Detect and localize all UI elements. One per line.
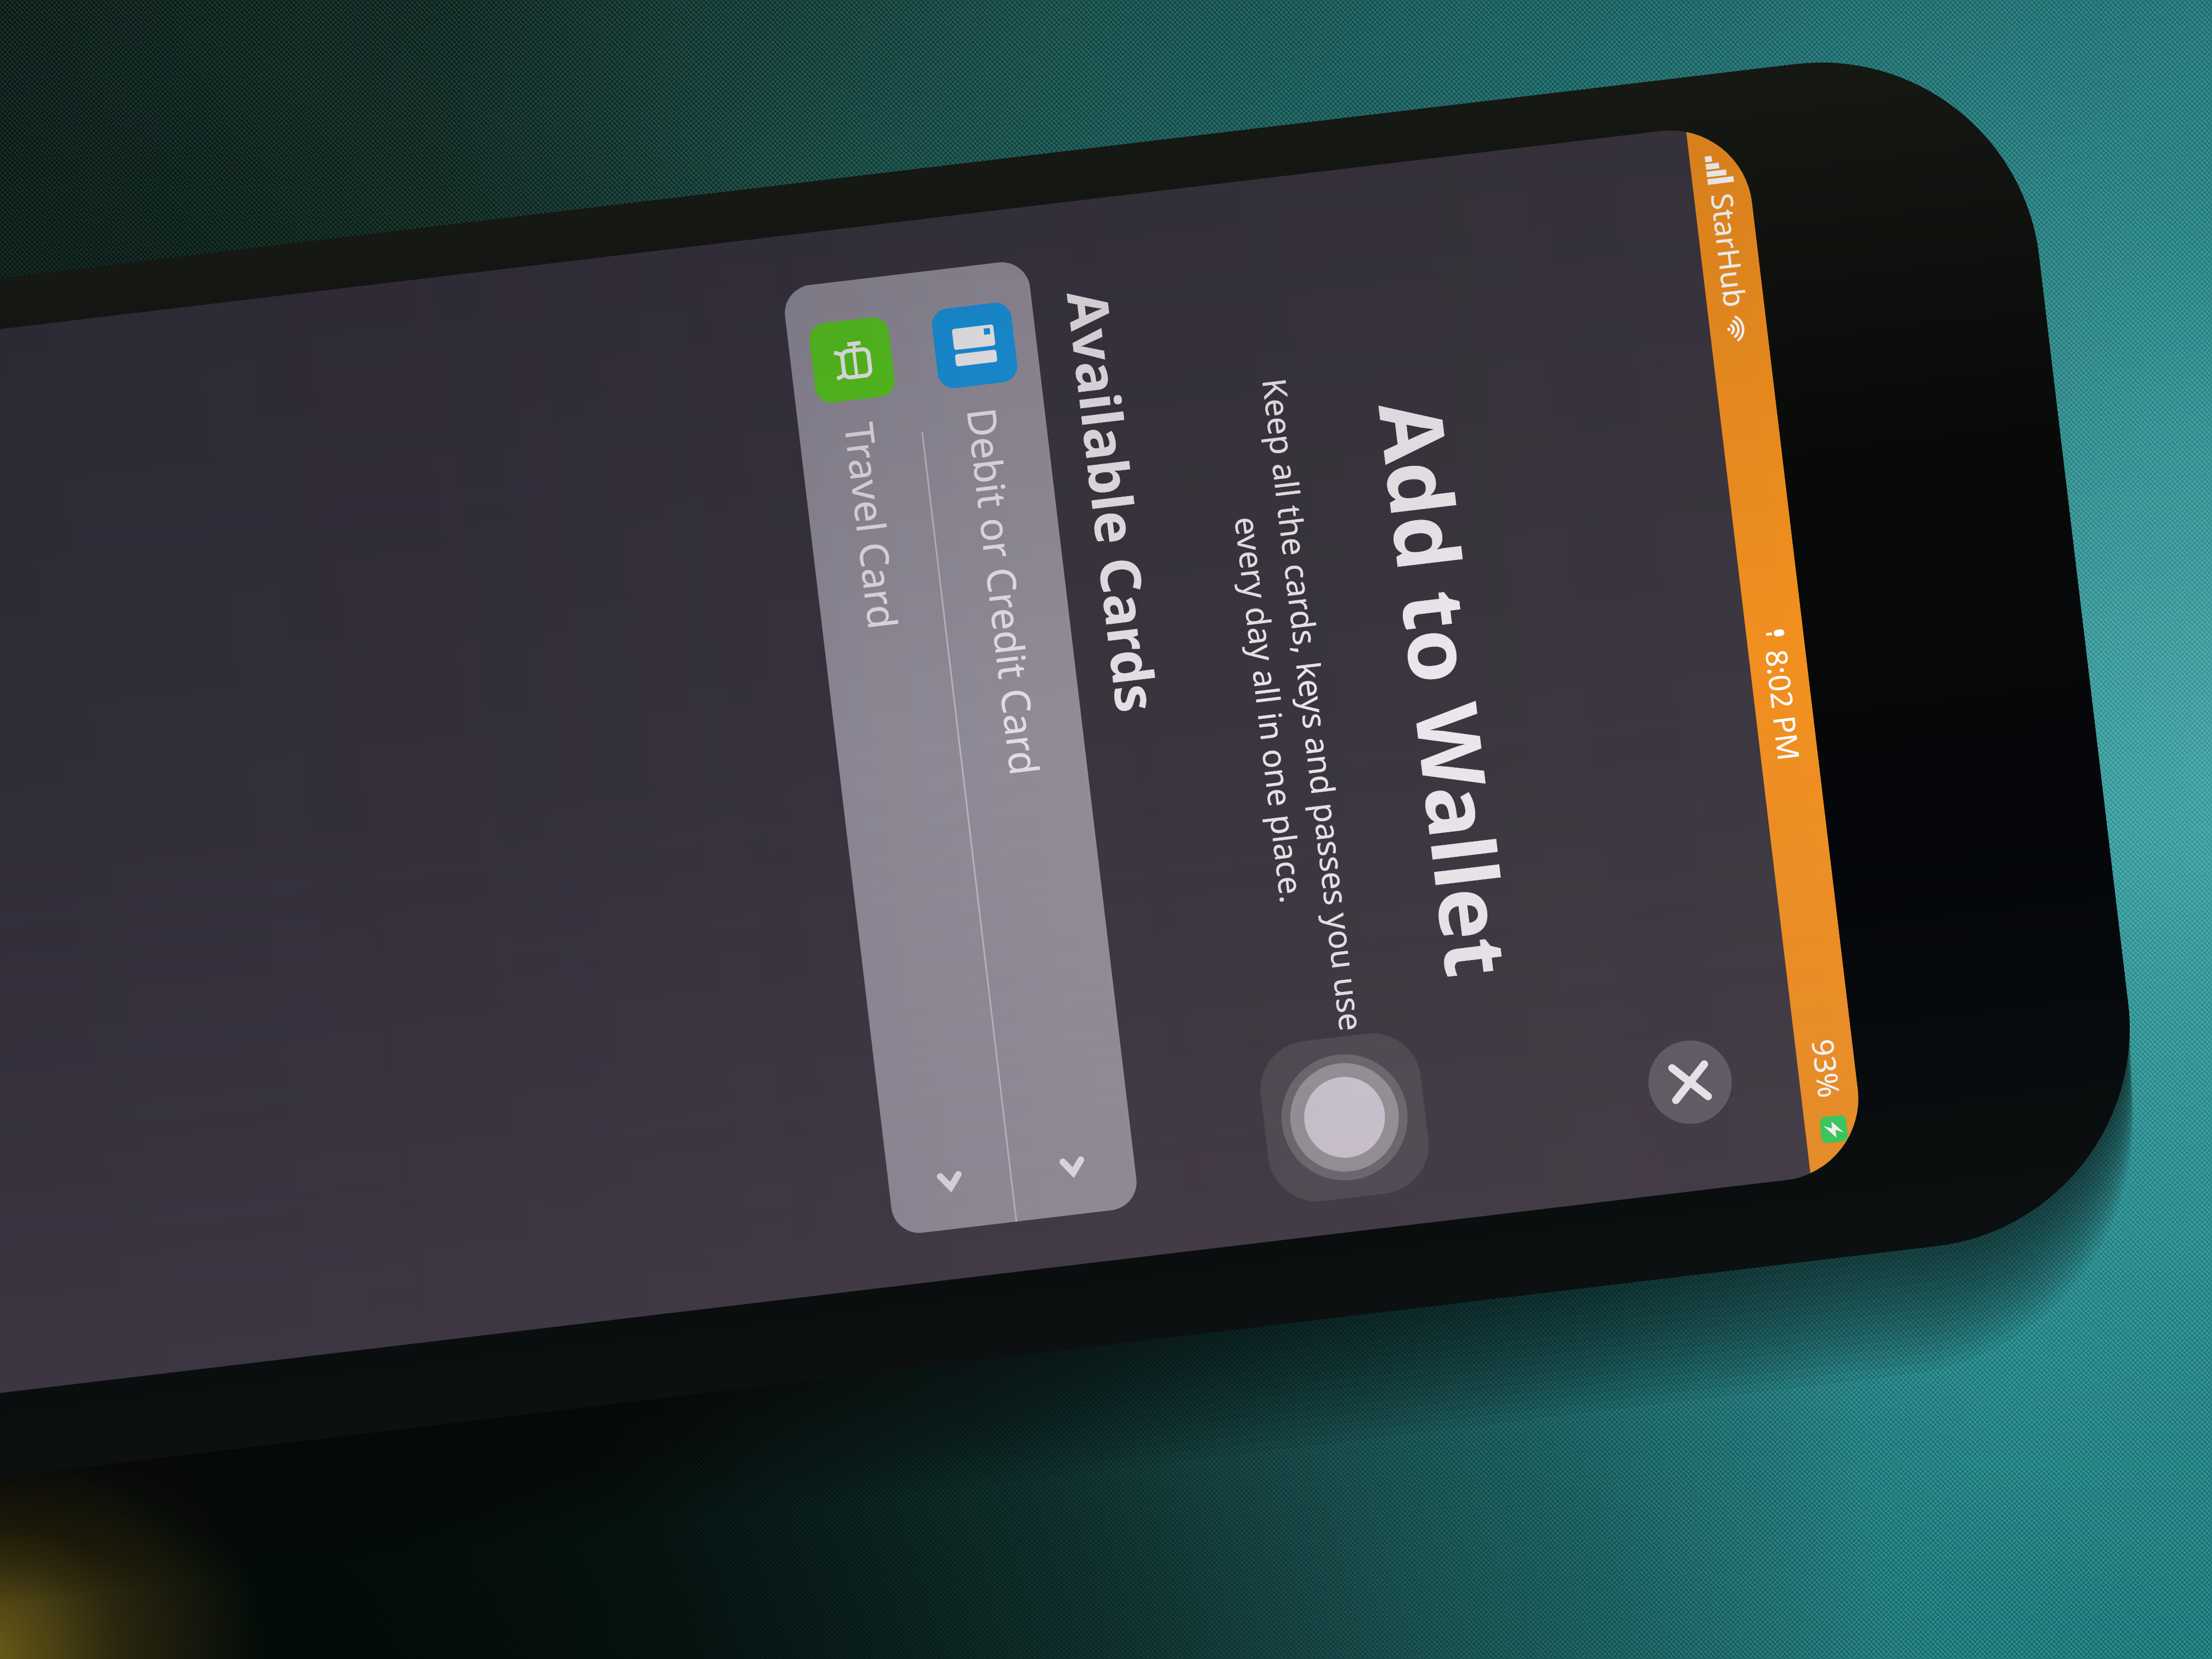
staticText: Keep all the cards, keys and passes you …: [1193, 243, 1390, 1171]
staticText: 8:02 PM: [1757, 647, 1810, 763]
staticText: Travel Card: [833, 419, 911, 632]
button[interactable]: Travel Card: [782, 274, 1017, 1236]
button[interactable]: Assistive touch: [1255, 1028, 1434, 1207]
button[interactable]: Close: [1644, 1036, 1736, 1128]
staticText: StarHub: [1702, 191, 1756, 310]
staticText: Add to Wallet: [1325, 157, 1567, 1220]
staticText: Available Cards: [1050, 286, 1176, 717]
button[interactable]: Debit or Credit Card: [904, 259, 1140, 1222]
staticText: 93%: [1803, 1037, 1850, 1100]
staticText: Debit or Credit Card: [955, 405, 1053, 778]
